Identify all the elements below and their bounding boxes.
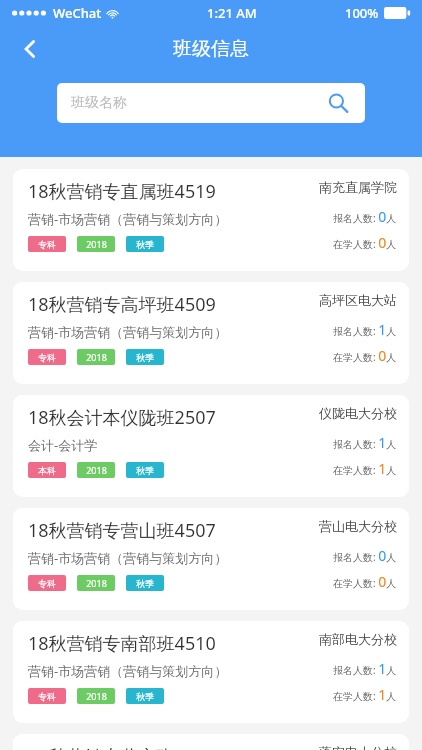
staticText: 营山电大分校 bbox=[319, 518, 397, 534]
staticText: 营销-市场营销（营销与策划方向） bbox=[28, 210, 228, 228]
button[interactable]: Search bbox=[325, 90, 351, 116]
staticText: 在学人数: 0人 bbox=[333, 572, 397, 591]
staticText: 秋季 bbox=[136, 465, 154, 476]
staticText: 1:21 AM bbox=[207, 4, 257, 22]
staticText: 18秋营销专蓬安班4508 bbox=[28, 744, 216, 750]
staticText: 2018 bbox=[86, 238, 107, 250]
staticText: 在学人数: 0人 bbox=[333, 346, 397, 365]
staticText: 仪陇电大分校 bbox=[319, 405, 397, 421]
staticText: 蓬安电大分校 bbox=[319, 744, 397, 750]
button[interactable]: 18秋营销专南部班4510 bbox=[13, 621, 409, 723]
staticText: 高坪区电大站 bbox=[319, 292, 397, 308]
staticText: 营销-市场营销（营销与策划方向） bbox=[28, 549, 228, 567]
staticText: 专科 bbox=[38, 691, 56, 702]
staticText: 在学人数: 1人 bbox=[333, 459, 397, 478]
staticText: 2018 bbox=[86, 577, 107, 589]
staticText: 报名人数: 0人 bbox=[333, 546, 397, 565]
staticText: 秋季 bbox=[136, 352, 154, 363]
staticText: 专科 bbox=[38, 239, 56, 250]
staticText: 2018 bbox=[86, 690, 107, 702]
staticText: 秋季 bbox=[136, 239, 154, 250]
staticText: 2018 bbox=[86, 351, 107, 363]
staticText: 秋季 bbox=[136, 578, 154, 589]
staticText: 本科 bbox=[38, 465, 56, 476]
button[interactable]: 班级名称 bbox=[57, 83, 365, 123]
button[interactable]: 18秋营销专高坪班4509 bbox=[13, 282, 409, 384]
staticText: 会计-会计学 bbox=[28, 436, 98, 454]
button[interactable]: Back bbox=[8, 27, 52, 71]
staticText: 专科 bbox=[38, 352, 56, 363]
staticText: 营销-市场营销（营销与策划方向） bbox=[28, 323, 228, 341]
staticText: 100% bbox=[345, 4, 379, 22]
staticText: 报名人数: 1人 bbox=[333, 320, 397, 339]
staticText: 班级信息 bbox=[173, 37, 249, 61]
button[interactable]: 18秋营销专直属班4519 bbox=[13, 169, 409, 271]
staticText: 18秋会计本仪陇班2507 bbox=[28, 405, 216, 430]
staticText: 在学人数: 1人 bbox=[333, 685, 397, 704]
staticText: 专科 bbox=[38, 578, 56, 589]
staticText: 营销-市场营销（营销与策划方向） bbox=[28, 662, 228, 680]
staticText: 报名人数: 0人 bbox=[333, 207, 397, 226]
staticText: 班级名称 bbox=[71, 94, 325, 112]
staticText: 南充直属学院 bbox=[319, 179, 397, 195]
button[interactable]: 18秋会计本仪陇班2507 bbox=[13, 395, 409, 497]
button[interactable]: 18秋营销专蓬安班4508 bbox=[13, 734, 409, 750]
staticText: 在学人数: 0人 bbox=[333, 233, 397, 252]
staticText: 报名人数: 1人 bbox=[333, 433, 397, 452]
staticText: 18秋营销专营山班4507 bbox=[28, 518, 216, 543]
button[interactable]: 18秋营销专营山班4507 bbox=[13, 508, 409, 610]
staticText: 南部电大分校 bbox=[319, 631, 397, 647]
staticText: 秋季 bbox=[136, 691, 154, 702]
staticText: 报名人数: 1人 bbox=[333, 659, 397, 678]
staticText: 2018 bbox=[86, 464, 107, 476]
staticText: 18秋营销专直属班4519 bbox=[28, 179, 216, 204]
staticText: WeChat bbox=[53, 4, 102, 22]
staticText: 18秋营销专南部班4510 bbox=[28, 631, 216, 656]
staticText: 18秋营销专高坪班4509 bbox=[28, 292, 216, 317]
